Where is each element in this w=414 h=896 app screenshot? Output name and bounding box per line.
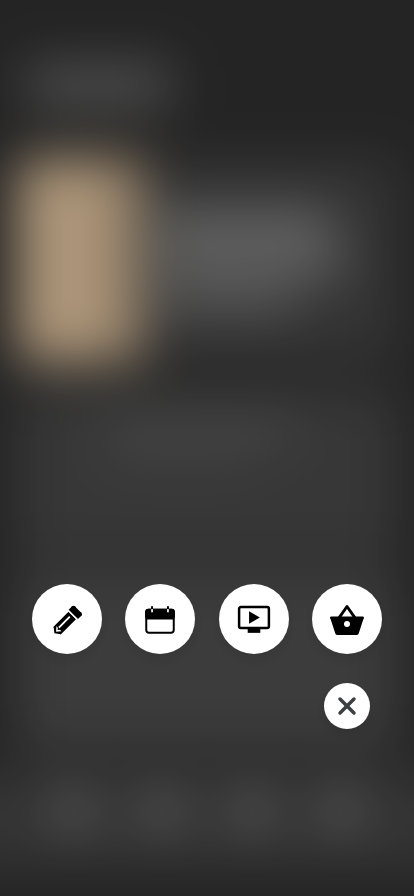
button[interactable]: Edit [32, 584, 102, 654]
button[interactable]: Calendar [125, 584, 195, 654]
button[interactable]: Close [324, 683, 370, 729]
button[interactable]: Shopping basket [312, 584, 382, 654]
button[interactable]: Smart display [219, 584, 289, 654]
